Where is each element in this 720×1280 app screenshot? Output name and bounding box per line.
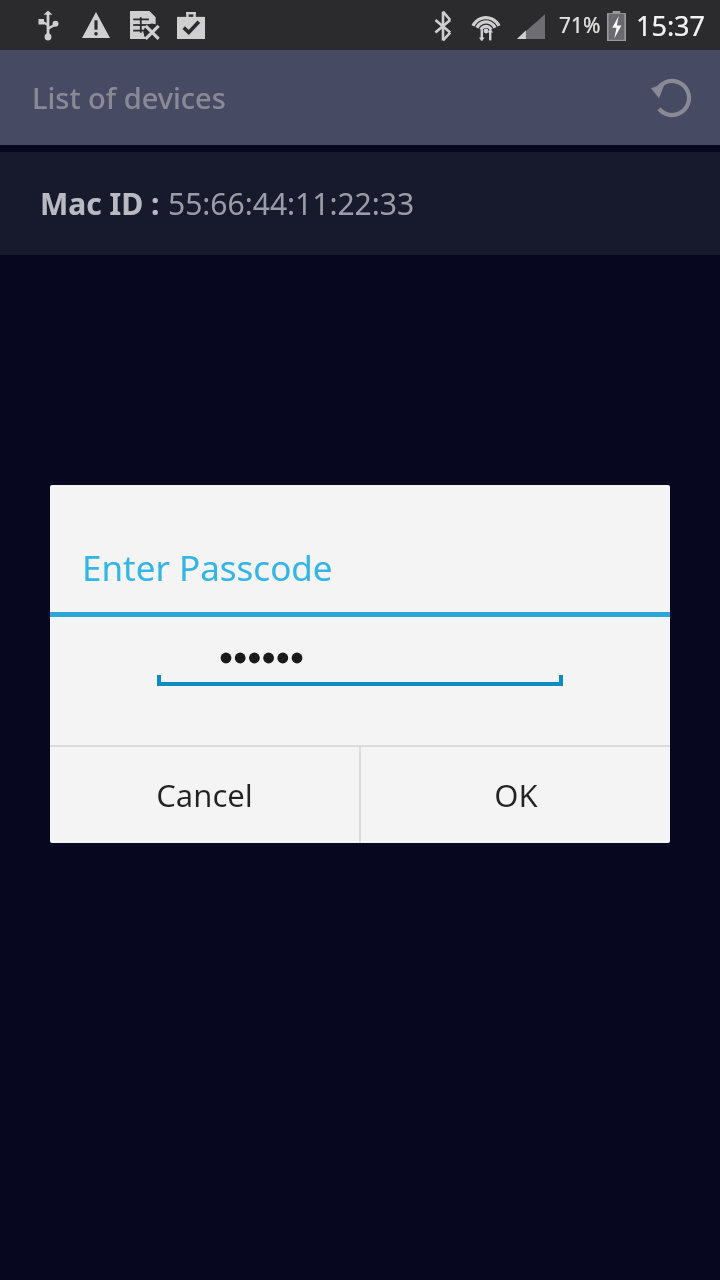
staticText: 55:66:44:11:22:33 [168, 183, 415, 224]
button[interactable]: Mac ID : [0, 152, 720, 255]
staticText: Mac ID : [40, 183, 168, 224]
staticText: 71% [559, 11, 601, 40]
button[interactable]: Cancel [50, 747, 359, 843]
staticText: 15:37 [636, 7, 706, 44]
staticText: Enter Passcode [82, 544, 333, 592]
staticText: Cancel [156, 774, 253, 816]
button[interactable]: OK [361, 747, 670, 843]
staticText: List of devices [32, 78, 226, 117]
staticText: OK [494, 774, 538, 816]
button[interactable]: Refresh [636, 62, 708, 134]
